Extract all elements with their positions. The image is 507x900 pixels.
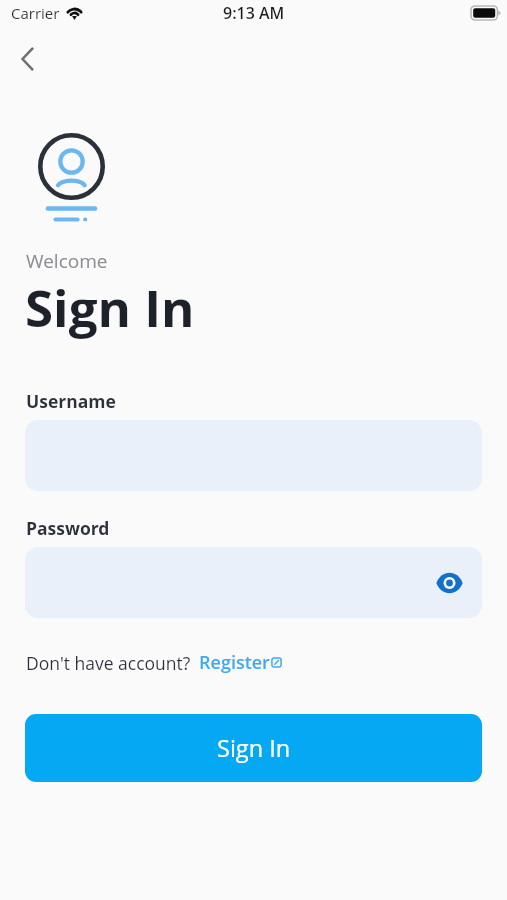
staticText: Carrier: [11, 3, 60, 23]
staticText: Sign In: [25, 272, 195, 341]
staticText: 9:13 AM: [223, 2, 285, 24]
staticText: Sign In: [217, 732, 291, 764]
staticText: Welcome: [26, 248, 108, 274]
button[interactable]: Register: [199, 650, 282, 675]
button[interactable]: Sign In: [25, 714, 482, 782]
staticText: Password: [26, 516, 110, 540]
staticText: Register: [199, 650, 270, 675]
staticText: Don't have account?: [26, 651, 191, 675]
button[interactable]: Show password: [428, 562, 470, 604]
button[interactable]: Back: [5, 36, 51, 82]
staticText: Username: [26, 389, 116, 413]
button[interactable]: Show password: [25, 547, 482, 618]
